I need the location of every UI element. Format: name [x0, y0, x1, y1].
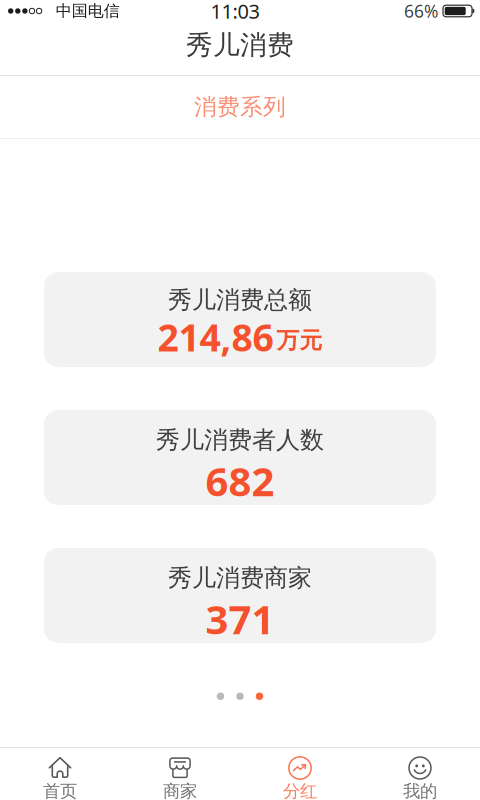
- button[interactable]: 商家: [120, 748, 240, 800]
- staticText: 中国电信: [56, 1, 120, 21]
- staticText: 万元: [276, 326, 322, 354]
- staticText: 秀儿消费总额: [168, 285, 312, 315]
- staticText: 682: [205, 454, 274, 507]
- staticText: 商家: [163, 780, 197, 800]
- button[interactable]: 我的: [360, 748, 480, 800]
- staticText: 首页: [43, 780, 77, 800]
- button[interactable]: 分红: [240, 748, 360, 800]
- staticText: 214,86: [157, 312, 273, 362]
- staticText: 秀儿消费者人数: [156, 425, 324, 455]
- staticText: 66%: [404, 0, 438, 22]
- staticText: 秀儿消费: [186, 29, 294, 61]
- staticText: 11:03: [210, 0, 259, 24]
- button[interactable]: 消费系列: [0, 76, 480, 138]
- staticText: 分红: [283, 780, 317, 800]
- staticText: 我的: [403, 780, 437, 800]
- staticText: 秀儿消费商家: [168, 563, 312, 593]
- staticText: 消费系列: [194, 93, 286, 121]
- button[interactable]: 首页: [0, 748, 120, 800]
- staticText: 371: [205, 592, 274, 645]
